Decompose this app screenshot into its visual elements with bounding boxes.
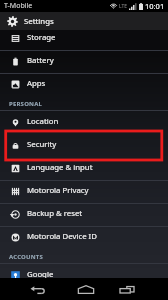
button[interactable]: Storage: [0, 30, 168, 50]
button[interactable]: Back: [16, 278, 59, 300]
staticText: Google: [27, 269, 54, 278]
staticText: LTE: [119, 3, 128, 10]
button[interactable]: Battery: [0, 50, 168, 73]
staticText: Storage: [27, 32, 56, 43]
staticText: T-Mobile: [4, 1, 33, 11]
button[interactable]: Motorola Privacy: [0, 180, 168, 203]
button[interactable]: Apps: [0, 73, 168, 96]
button[interactable]: Backup & reset: [0, 203, 168, 226]
button[interactable]: Google: [0, 264, 168, 278]
staticText: 10:01: [145, 1, 165, 11]
button[interactable]: Security: [0, 134, 168, 157]
staticText: Backup & reset: [27, 208, 83, 219]
button[interactable]: Language & input: [0, 157, 168, 180]
staticText: Motorola Device ID: [27, 231, 97, 242]
staticText: Settings: [24, 16, 54, 27]
button[interactable]: Settings: [0, 12, 168, 30]
staticText: Motorola Privacy: [27, 185, 89, 196]
button[interactable]: Motorola Device ID: [0, 226, 168, 249]
staticText: Apps: [27, 78, 46, 89]
staticText: Battery: [27, 55, 54, 66]
staticText: Location: [27, 116, 59, 127]
staticText: ACCOUNTS: [9, 253, 44, 261]
button[interactable]: Home: [64, 278, 107, 300]
staticText: Security: [27, 139, 57, 150]
button[interactable]: Recent apps: [106, 278, 149, 300]
staticText: Language & input: [27, 162, 93, 173]
button[interactable]: Location: [0, 111, 168, 134]
staticText: PERSONAL: [9, 100, 43, 108]
